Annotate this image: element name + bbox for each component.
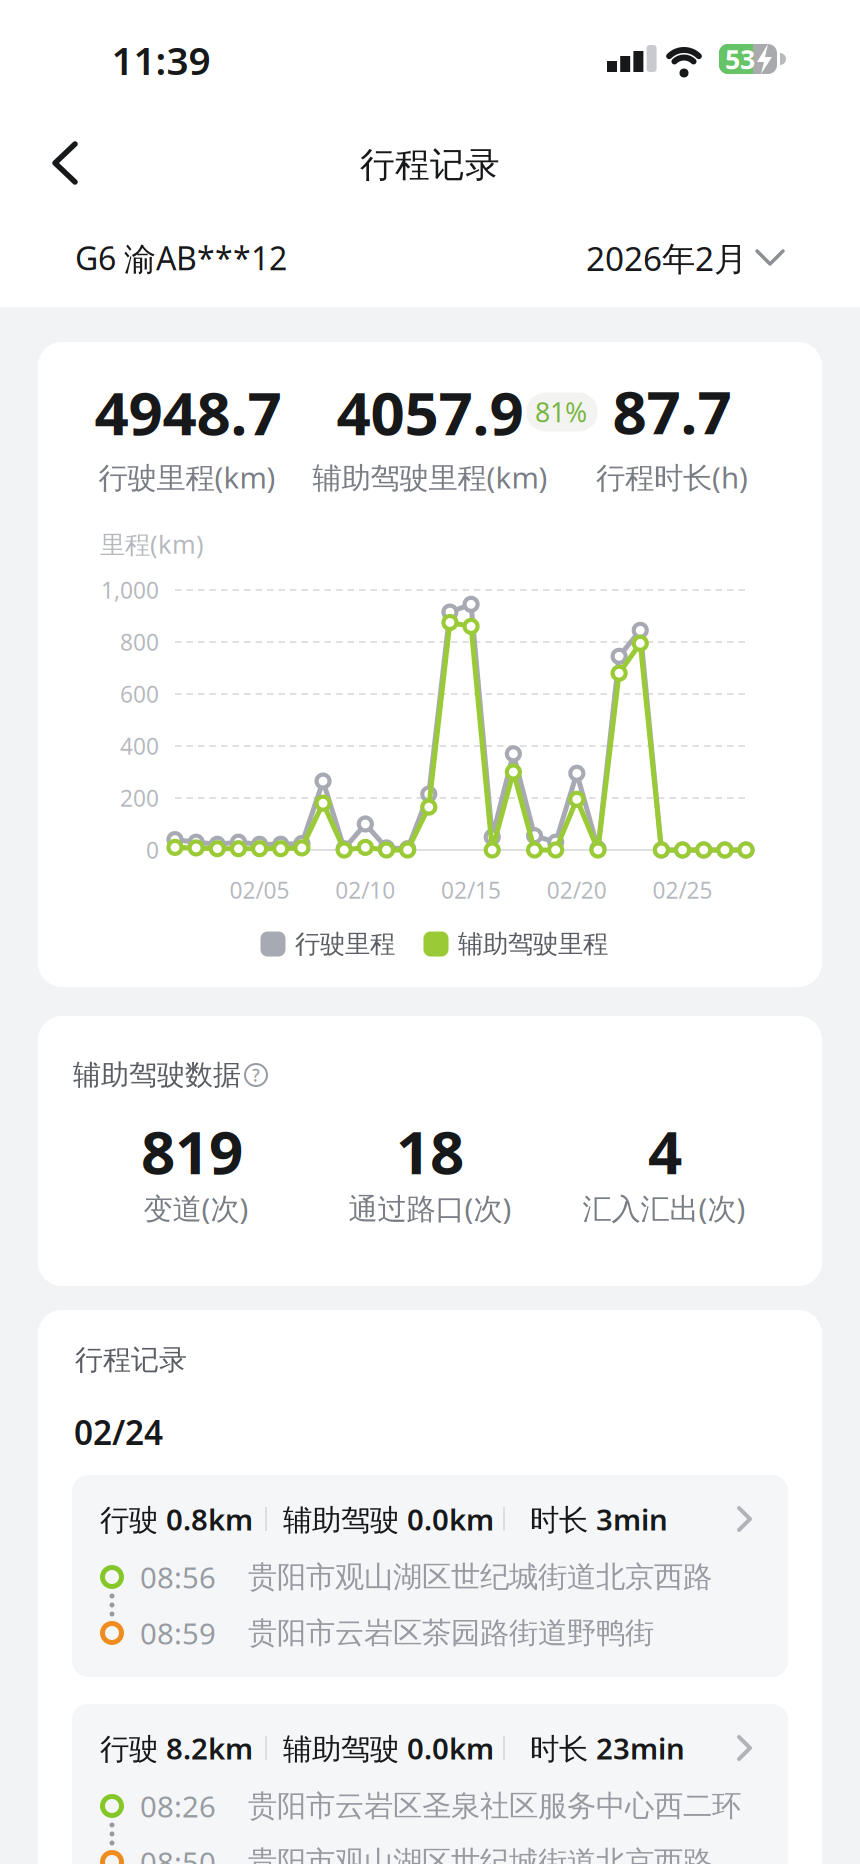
staticText: 变道(次)	[143, 1188, 248, 1227]
staticText: 贵阳市云岩区茶园路街道野鸭街	[248, 1615, 654, 1651]
staticText: 400	[120, 731, 159, 761]
staticText: 2026年2月	[586, 236, 747, 280]
button[interactable]: Back	[37, 133, 97, 193]
staticText: 0	[146, 835, 159, 865]
staticText: 时长 3min	[530, 1499, 668, 1538]
staticText: 行程记录	[75, 1343, 187, 1377]
button[interactable]: 行驶 8.2km	[72, 1704, 788, 1864]
staticText: 行驶里程(km)	[98, 457, 275, 496]
staticText: 汇入汇出(次)	[582, 1188, 745, 1227]
staticText: 辅助驾驶 0.0km	[283, 1499, 494, 1538]
staticText: 02/24	[74, 1410, 163, 1454]
staticText: 贵阳市云岩区圣泉社区服务中心西二环	[248, 1788, 741, 1824]
button[interactable]: 行驶 0.8km	[72, 1475, 788, 1677]
staticText: 08:50	[140, 1842, 216, 1864]
staticText: 1,000	[101, 575, 159, 605]
staticText: 行程记录	[360, 144, 500, 186]
staticText: 行程时长(h)	[596, 457, 748, 496]
staticText: 行驶 0.8km	[100, 1499, 253, 1538]
staticText: G6 渝AB***12	[75, 237, 287, 279]
staticText: 4	[648, 1111, 682, 1191]
staticText: ?	[252, 1063, 260, 1086]
staticText: 02/05	[230, 875, 290, 905]
staticText: 辅助驾驶里程(km)	[312, 457, 547, 496]
staticText: 辅助驾驶里程	[458, 928, 608, 959]
staticText: 02/25	[653, 875, 713, 905]
staticText: 11:39	[111, 34, 210, 86]
staticText: 02/15	[441, 875, 501, 905]
staticText: 600	[120, 679, 159, 709]
staticText: 200	[120, 783, 159, 813]
staticText: 时长 23min	[530, 1728, 685, 1767]
staticText: 贵阳市观山湖区世纪城街道北京西路	[248, 1844, 712, 1864]
staticText: 行驶 8.2km	[100, 1728, 253, 1767]
staticText: 4948.7	[94, 372, 281, 452]
staticText: 行驶里程	[295, 928, 395, 959]
staticText: 08:59	[140, 1613, 216, 1652]
staticText: 81%	[535, 394, 587, 430]
staticText: 通过路口(次)	[348, 1188, 511, 1227]
button[interactable]: 2026年2月	[566, 230, 796, 286]
staticText: 08:56	[140, 1557, 216, 1596]
staticText: 87.7	[612, 371, 731, 451]
staticText: 辅助驾驶 0.0km	[283, 1728, 494, 1767]
staticText: 辅助驾驶数据	[73, 1058, 241, 1092]
staticText: 4057.9	[336, 372, 523, 452]
staticText: 53	[725, 41, 755, 77]
staticText: 08:26	[140, 1786, 216, 1825]
staticText: 819	[141, 1111, 243, 1191]
staticText: 02/20	[547, 875, 607, 905]
staticText: 800	[120, 627, 159, 657]
staticText: 02/10	[335, 875, 395, 905]
staticText: 贵阳市观山湖区世纪城街道北京西路	[248, 1559, 712, 1595]
staticText: 18	[396, 1111, 464, 1191]
staticText: 里程(km)	[100, 527, 204, 561]
button[interactable]: 辅助驾驶数据说明	[238, 1057, 274, 1093]
